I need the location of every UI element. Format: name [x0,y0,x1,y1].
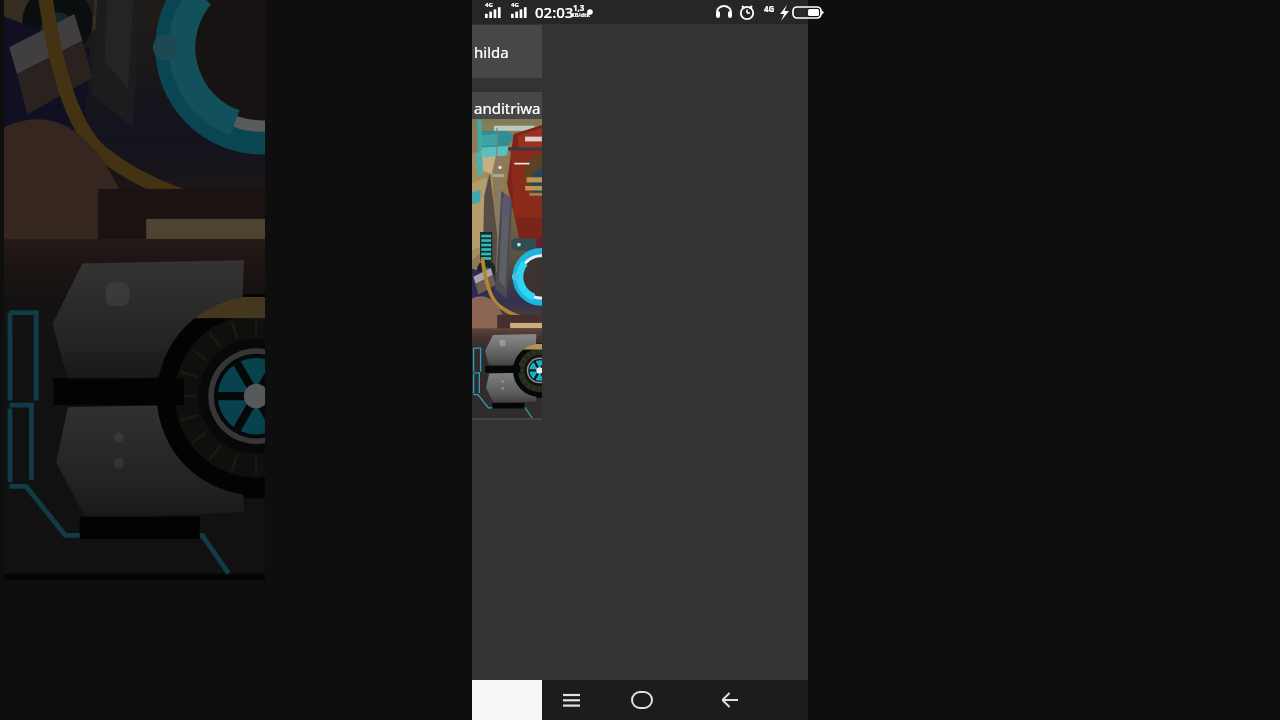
staticText: KB/dtk [571,11,590,18]
staticText: 4G [764,3,775,14]
staticText: 31 [797,6,807,17]
staticText: 1,3 [573,2,585,13]
staticText: 4G [485,1,493,9]
staticText: hilda [474,42,509,62]
button[interactable]: Back [702,680,757,720]
button[interactable]: Home [614,680,669,720]
staticText: 02:03 [535,2,574,22]
button[interactable]: anditriwa [472,92,542,420]
staticText: anditriwa [474,98,541,118]
button[interactable]: Recents [542,680,602,720]
staticText: 4G [511,1,519,9]
button[interactable]: hilda [472,25,542,78]
